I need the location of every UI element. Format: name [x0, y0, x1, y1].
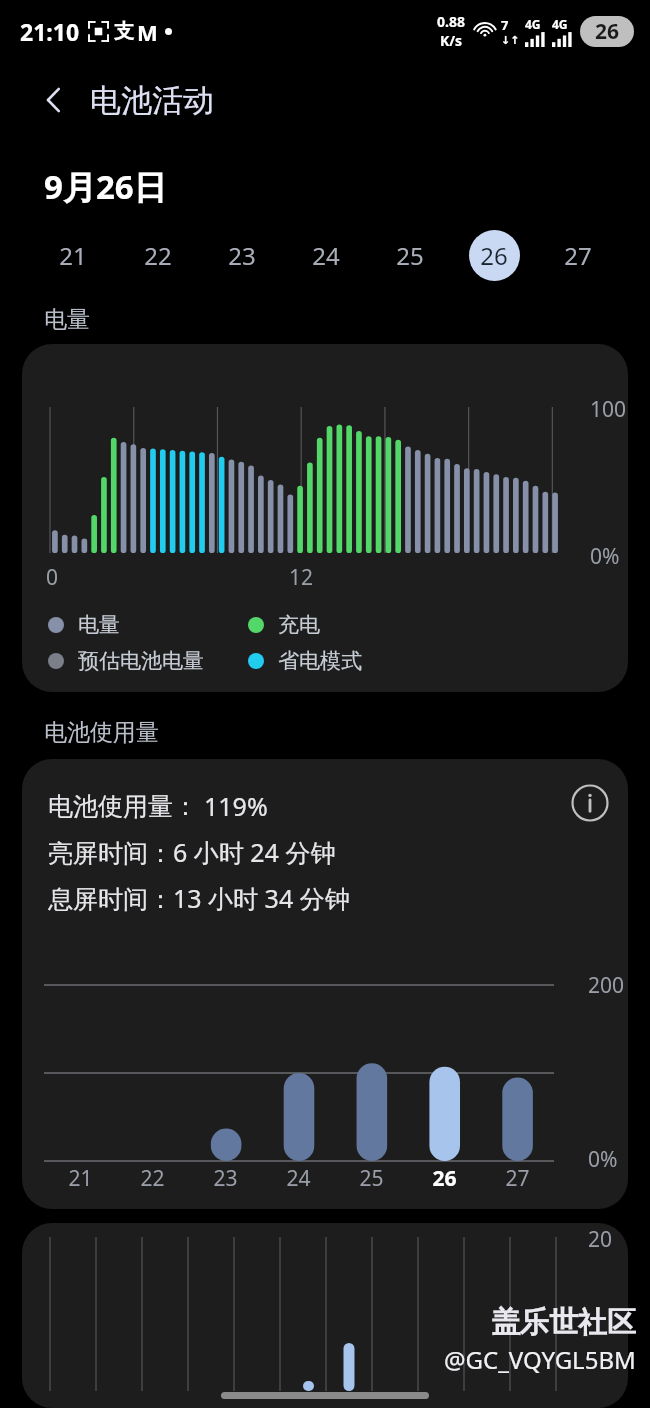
staticText: 电池使用量： [48, 791, 198, 822]
button[interactable]: 22 [115, 227, 200, 283]
staticText: 27 [564, 239, 592, 272]
staticText: K/s [440, 31, 463, 50]
staticText: 0% [588, 1145, 618, 1174]
staticText: 22 [144, 239, 172, 272]
staticText: @GC_VQYGL5BM [444, 1343, 636, 1376]
staticText: 9月26日 [44, 164, 167, 209]
staticText: 21 [59, 239, 87, 272]
staticText: 支 [114, 19, 134, 44]
staticText: 25 [396, 239, 424, 272]
staticText: 电量 [44, 305, 90, 334]
staticText: 0.88 [437, 12, 465, 31]
staticText: 24 [312, 239, 340, 272]
staticText: 省电模式 [278, 648, 362, 674]
staticText: 25 [359, 1164, 384, 1193]
button[interactable]: 24 [284, 227, 368, 283]
staticText: 4G [525, 16, 541, 32]
staticText: M [137, 17, 158, 47]
button[interactable]: Info [562, 775, 618, 831]
button[interactable]: 25 [368, 227, 452, 283]
staticText: 0% [590, 542, 620, 571]
staticText: 26 [480, 239, 508, 272]
staticText: 息屏时间：13 小时 34 分钟 [48, 881, 350, 915]
staticText: 充电 [278, 612, 320, 638]
button[interactable]: 21 [30, 227, 115, 283]
staticText: 27 [505, 1164, 530, 1193]
staticText: 200 [588, 971, 625, 1000]
staticText: 电池使用量 [44, 718, 159, 747]
staticText: 盖乐世社区 [491, 1304, 636, 1341]
staticText: 22 [140, 1164, 165, 1193]
button[interactable]: 23 [200, 227, 284, 283]
staticText: 电量 [78, 612, 120, 638]
staticText: 21:10 [20, 16, 80, 47]
staticText: 26 [432, 1164, 457, 1193]
staticText: 24 [286, 1164, 311, 1193]
button[interactable]: Back [32, 78, 76, 122]
staticText: 100 [590, 395, 627, 424]
button[interactable]: 27 [536, 227, 620, 283]
staticText: 20 [588, 1225, 613, 1254]
staticText: 21 [68, 1164, 93, 1193]
staticText: 亮屏时间：6 小时 24 分钟 [48, 835, 336, 869]
staticText: 电池活动 [90, 81, 214, 120]
staticText: 119% [204, 789, 268, 823]
staticText: ↓↑ [501, 34, 520, 47]
staticText: 4G [552, 16, 568, 32]
staticText: 23 [228, 239, 256, 272]
button[interactable]: 100 [22, 344, 628, 692]
staticText: 23 [213, 1164, 238, 1193]
button[interactable]: 26 [452, 227, 536, 283]
staticText: 预估电池电量 [78, 648, 204, 674]
staticText: 7 [501, 16, 509, 34]
staticText: 12 [289, 563, 314, 592]
staticText: 0 [46, 563, 59, 592]
staticText: 26 [595, 17, 620, 46]
